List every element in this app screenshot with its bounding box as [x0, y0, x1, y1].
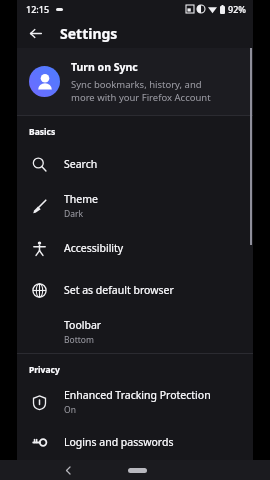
staticText: Privacy	[29, 364, 60, 376]
button[interactable]: Turn on Sync	[17, 48, 253, 115]
staticText: 12:15	[26, 3, 50, 15]
staticText: Turn on Sync	[71, 60, 138, 74]
staticText: On	[64, 404, 76, 416]
staticText: Sync bookmarks, history, and more with y…	[71, 78, 211, 104]
button[interactable]: Back	[22, 20, 48, 46]
button[interactable]: Enhanced Tracking Protection	[17, 381, 253, 423]
button[interactable]: Home	[128, 468, 147, 473]
staticText: Theme	[64, 192, 98, 206]
button[interactable]: Accessibility	[17, 227, 253, 269]
staticText: Set as default browser	[64, 283, 174, 297]
button[interactable]: Set as default browser	[17, 269, 253, 311]
staticText: Accessibility	[64, 241, 124, 255]
staticText: Bottom	[64, 334, 94, 346]
staticText: Basics	[29, 126, 56, 138]
staticText: Search	[64, 157, 98, 171]
staticText: Logins and passwords	[64, 435, 174, 449]
staticText: Settings	[60, 24, 118, 43]
button[interactable]: Logins and passwords	[17, 423, 253, 460]
staticText: Enhanced Tracking Protection	[64, 388, 211, 402]
button[interactable]: Theme	[17, 185, 253, 227]
button[interactable]: Toolbar	[17, 311, 253, 353]
staticText: Toolbar	[64, 318, 102, 332]
staticText: Dark	[64, 208, 84, 220]
staticText: 92%	[228, 3, 246, 15]
button[interactable]: Back	[58, 460, 78, 480]
button[interactable]: Search	[17, 143, 253, 185]
